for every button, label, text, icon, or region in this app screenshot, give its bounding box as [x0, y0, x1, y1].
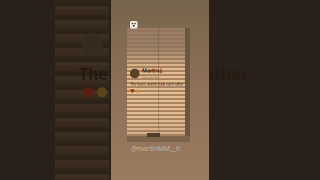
staticText: The te [79, 63, 129, 84]
staticText: @martinj [142, 75, 159, 80]
staticText: h other [190, 63, 248, 84]
button[interactable]: App [130, 21, 137, 28]
staticText: Martin J. [142, 67, 163, 74]
staticText: @martinMM__h [131, 144, 180, 153]
staticText: The loves and to look each other [130, 81, 184, 87]
button[interactable]: Martin J. [130, 67, 188, 94]
staticText: ♥ [130, 88, 135, 94]
